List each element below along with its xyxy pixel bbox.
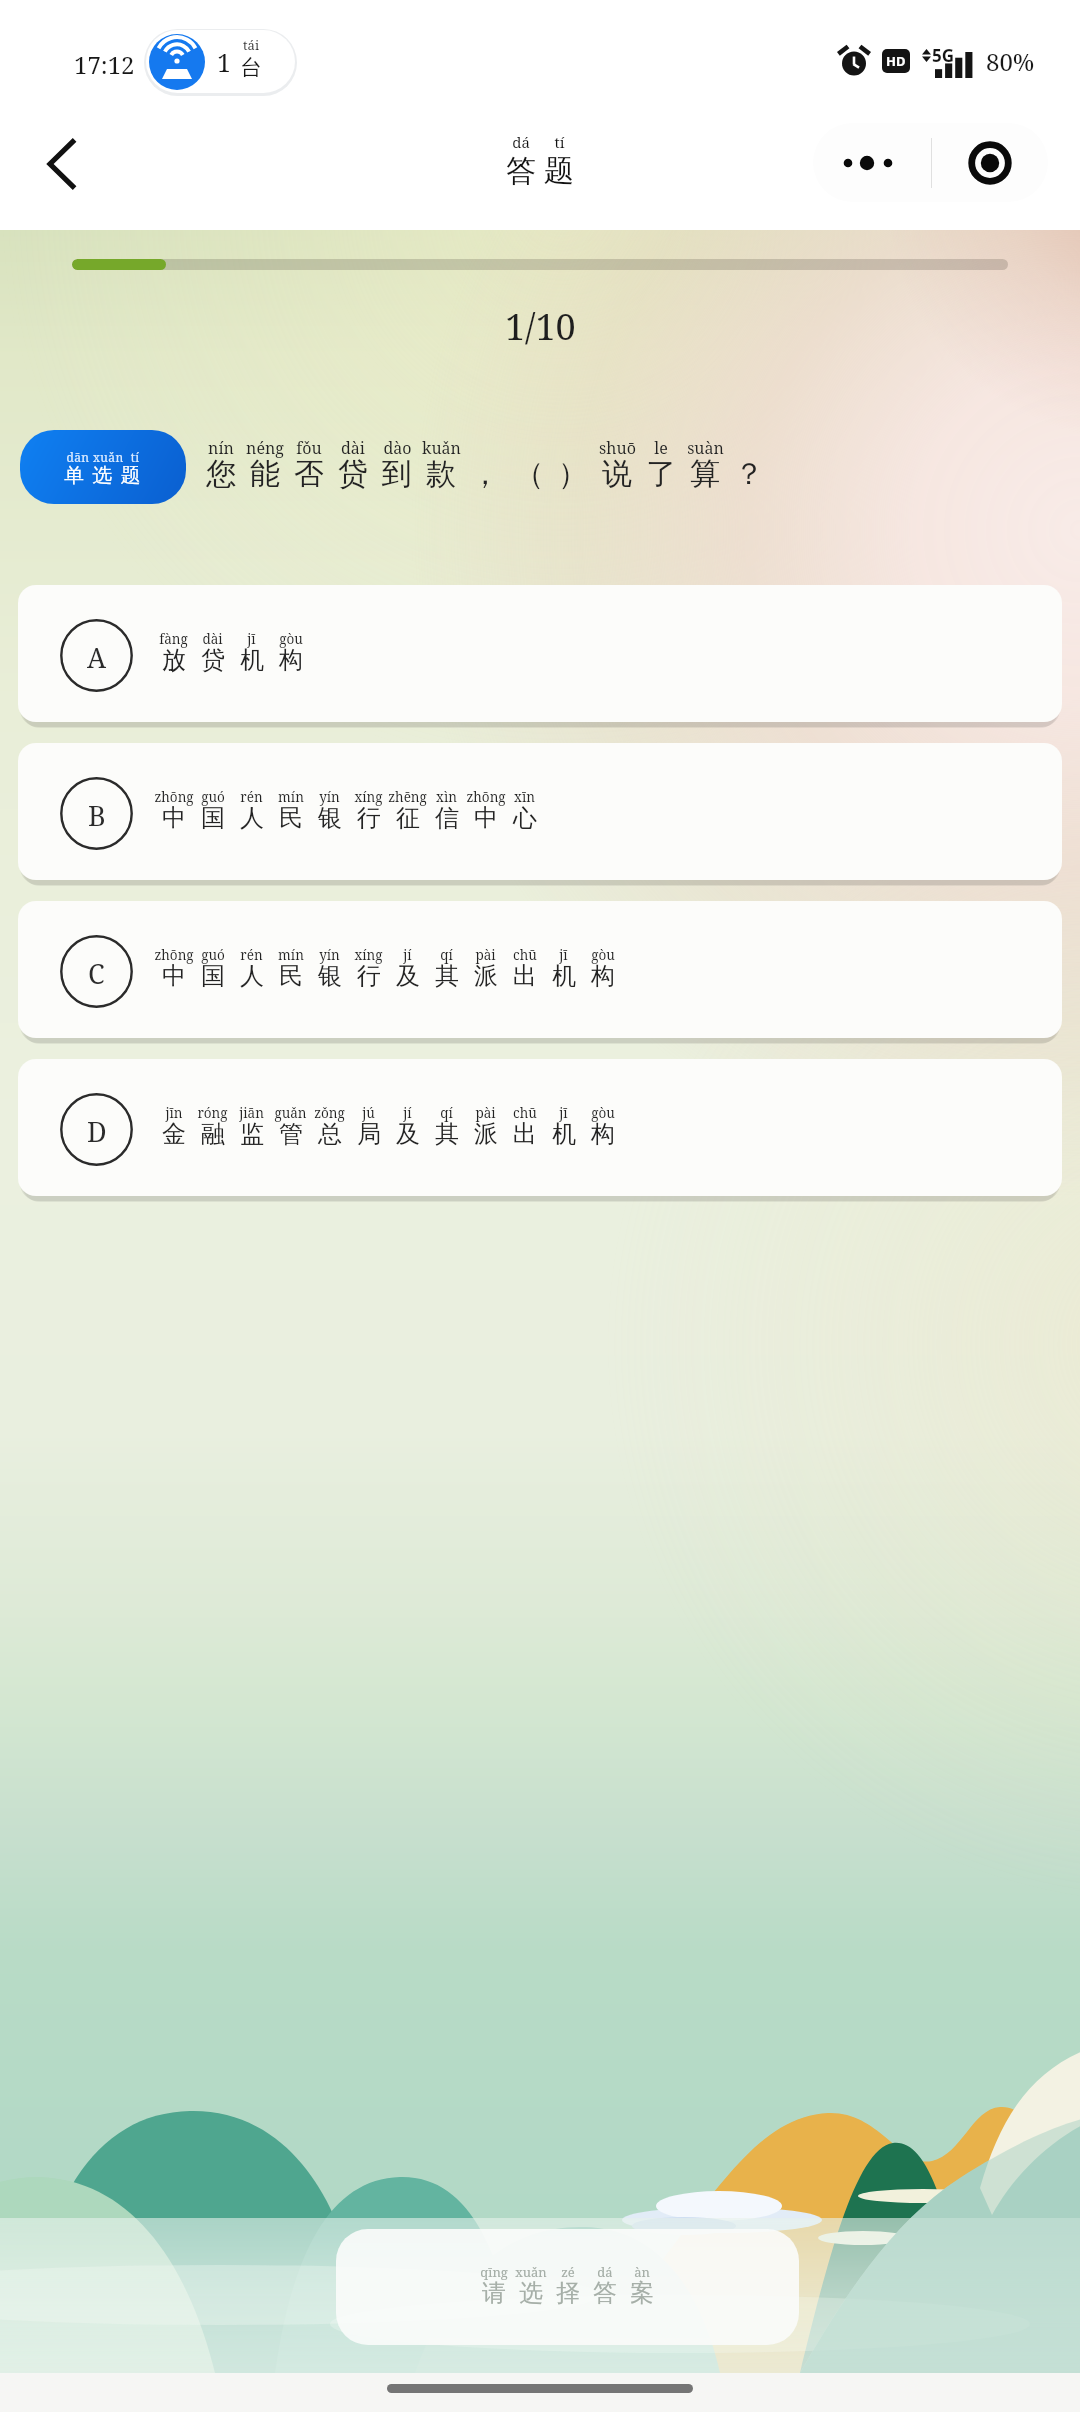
staticText: 信: [435, 803, 459, 833]
staticText: zhōng: [154, 788, 194, 806]
button[interactable]: qīng: [336, 2229, 799, 2345]
staticText: B: [88, 797, 106, 834]
staticText: 算: [690, 455, 720, 493]
staticText: gòu: [591, 1104, 615, 1122]
staticText: pài: [475, 946, 496, 964]
staticText: 否: [294, 455, 324, 493]
staticText: 构: [279, 645, 303, 675]
staticText: zǒng: [314, 1104, 345, 1122]
staticText: 征: [396, 803, 420, 833]
staticText: 其: [435, 961, 459, 991]
staticText: gòu: [591, 946, 615, 964]
staticText: guó: [201, 788, 225, 806]
staticText: qīng: [480, 2263, 508, 2281]
staticText: 监: [240, 1119, 264, 1149]
staticText: 了: [646, 455, 676, 493]
staticText: yín: [319, 788, 340, 806]
button[interactable]: D: [18, 1059, 1062, 1196]
staticText: 国: [201, 961, 225, 991]
staticText: 台: [240, 54, 262, 82]
staticText: 总: [318, 1119, 342, 1149]
staticText: 人: [240, 803, 264, 833]
staticText: dài: [341, 437, 365, 459]
staticText: dá: [597, 2263, 613, 2281]
staticText: ？: [734, 455, 764, 493]
staticText: 17:12: [74, 48, 135, 81]
staticText: le: [654, 437, 668, 459]
staticText: 能: [250, 455, 280, 493]
staticText: 请: [482, 2278, 506, 2308]
staticText: 贷: [201, 645, 225, 675]
staticText: fàng: [159, 630, 188, 648]
staticText: 选: [519, 2278, 543, 2308]
staticText: 融: [201, 1119, 225, 1149]
staticText: fǒu: [296, 437, 322, 459]
button[interactable]: B: [18, 743, 1062, 880]
button[interactable]: dān xuǎn tí: [20, 430, 186, 504]
staticText: xìn: [436, 788, 457, 806]
staticText: C: [88, 955, 105, 992]
button[interactable]: Back: [24, 126, 100, 202]
staticText: jī: [247, 630, 256, 648]
button[interactable]: More options: [813, 123, 931, 202]
staticText: shuō: [599, 437, 636, 459]
staticText: 5G: [932, 44, 955, 67]
staticText: 派: [474, 1119, 498, 1149]
staticText: jí: [403, 1104, 412, 1122]
button[interactable]: A: [18, 585, 1062, 722]
staticText: zhēng: [388, 788, 427, 806]
staticText: 答: [506, 152, 536, 190]
staticText: qí: [440, 946, 453, 964]
staticText: zé: [561, 2263, 575, 2281]
staticText: 题: [544, 152, 574, 190]
staticText: 1: [217, 45, 231, 79]
staticText: 银: [318, 803, 342, 833]
staticText: guǎn: [274, 1104, 307, 1122]
staticText: 放: [162, 645, 186, 675]
staticText: 款: [426, 455, 456, 493]
staticText: gòu: [279, 630, 303, 648]
staticText: 您: [206, 455, 236, 493]
staticText: 出: [513, 961, 537, 991]
staticText: dào: [383, 437, 412, 459]
staticText: jiān: [239, 1104, 264, 1122]
staticText: 中: [162, 961, 186, 991]
staticText: 民: [279, 803, 303, 833]
staticText: pài: [475, 1104, 496, 1122]
staticText: 构: [591, 1119, 615, 1149]
staticText: suàn: [687, 437, 724, 459]
staticText: chū: [513, 946, 537, 964]
staticText: jī: [559, 1104, 568, 1122]
staticText: róng: [197, 1104, 228, 1122]
staticText: 派: [474, 961, 498, 991]
staticText: rén: [240, 788, 263, 806]
staticText: nín: [208, 437, 234, 459]
staticText: 及: [396, 1119, 420, 1149]
staticText: jīn: [165, 1104, 183, 1122]
staticText: zhōng: [154, 946, 194, 964]
staticText: 机: [240, 645, 264, 675]
staticText: 行: [357, 961, 381, 991]
staticText: 中: [474, 803, 498, 833]
button[interactable]: C: [18, 901, 1062, 1038]
staticText: guó: [201, 946, 225, 964]
staticText: 银: [318, 961, 342, 991]
staticText: jí: [403, 946, 412, 964]
staticText: D: [87, 1113, 107, 1150]
staticText: 人: [240, 961, 264, 991]
staticText: 择: [556, 2278, 580, 2308]
staticText: tái: [243, 36, 260, 54]
staticText: chū: [513, 1104, 537, 1122]
staticText: 民: [279, 961, 303, 991]
staticText: 1/10: [505, 302, 576, 351]
staticText: qí: [440, 1104, 453, 1122]
button[interactable]: Close mini program: [932, 123, 1048, 202]
staticText: dān xuǎn tí: [66, 449, 140, 465]
staticText: dài: [202, 630, 223, 648]
staticText: ）: [558, 455, 588, 493]
staticText: 及: [396, 961, 420, 991]
staticText: àn: [634, 2263, 650, 2281]
staticText: 其: [435, 1119, 459, 1149]
staticText: xīn: [514, 788, 535, 806]
staticText: A: [87, 639, 107, 676]
